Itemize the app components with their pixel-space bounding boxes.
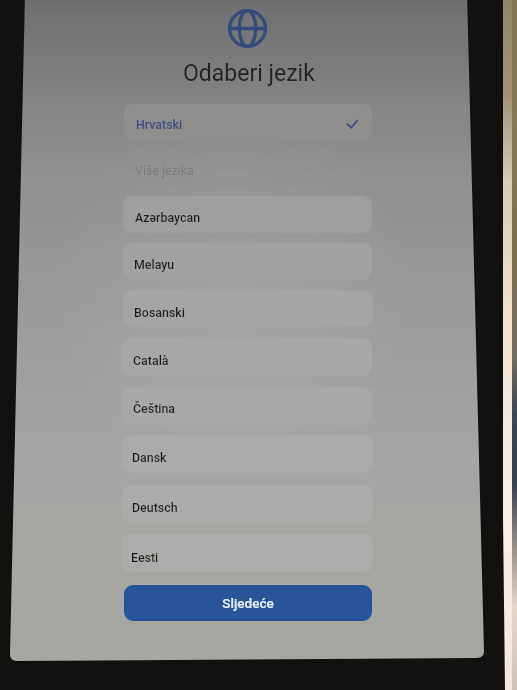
staticText: Deutsch <box>132 500 178 515</box>
staticText: Bosanski <box>134 305 185 320</box>
staticText: Català <box>133 353 169 368</box>
staticText: Čeština <box>133 401 176 416</box>
staticText: Odaberi jezik <box>183 60 315 87</box>
staticText: Eesti <box>131 550 159 565</box>
button[interactable] <box>122 485 373 523</box>
button[interactable] <box>121 534 373 572</box>
button[interactable] <box>122 435 373 473</box>
button[interactable] <box>123 243 372 280</box>
staticText: Melayu <box>134 257 175 272</box>
button[interactable]: Sljedeće <box>124 585 372 621</box>
staticText: Sljedeće <box>222 595 274 611</box>
staticText: Više jezika <box>135 163 194 178</box>
button[interactable] <box>123 290 373 327</box>
staticText: Hrvatski <box>136 117 183 132</box>
button[interactable] <box>122 338 372 376</box>
staticText: Dansk <box>132 450 167 465</box>
button[interactable] <box>124 104 372 141</box>
staticText: Azərbaycan <box>135 210 201 225</box>
button[interactable] <box>123 196 372 233</box>
button[interactable] <box>122 387 372 425</box>
other: Language <box>227 8 268 49</box>
